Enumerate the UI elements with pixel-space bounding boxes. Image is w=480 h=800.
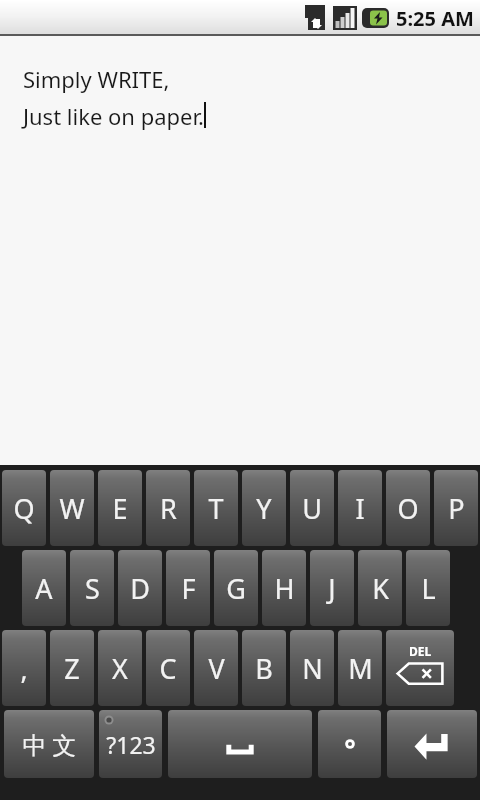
button[interactable]: Period: [318, 710, 381, 778]
button[interactable]: X: [98, 630, 142, 706]
staticText: A: [35, 570, 53, 607]
button[interactable]: Y: [242, 470, 286, 546]
button[interactable]: P: [434, 470, 478, 546]
staticText: B: [255, 650, 273, 687]
button[interactable]: S: [70, 550, 114, 626]
button[interactable]: I: [338, 470, 382, 546]
button[interactable]: K: [358, 550, 402, 626]
staticText: S: [85, 570, 100, 607]
button[interactable]: U: [290, 470, 334, 546]
staticText: N: [302, 650, 323, 687]
staticText: R: [160, 490, 177, 527]
staticText: C: [159, 650, 177, 687]
button[interactable]: D: [118, 550, 162, 626]
button[interactable]: B: [242, 630, 286, 706]
staticText: M: [348, 650, 373, 687]
staticText: O: [397, 490, 419, 527]
staticText: 5:25 AM: [396, 5, 474, 32]
staticText: V: [208, 650, 225, 687]
button[interactable]: R: [146, 470, 190, 546]
button[interactable]: ,: [2, 630, 46, 706]
button[interactable]: Delete: [386, 630, 454, 706]
button[interactable]: M: [338, 630, 382, 706]
button[interactable]: E: [98, 470, 142, 546]
button[interactable]: Q: [2, 470, 46, 546]
staticText: G: [226, 570, 246, 607]
button[interactable]: C: [146, 630, 190, 706]
staticText: Q: [13, 490, 35, 527]
staticText: K: [372, 570, 389, 607]
button[interactable]: W: [50, 470, 94, 546]
staticText: Y: [256, 490, 272, 527]
button[interactable]: Z: [50, 630, 94, 706]
staticText: 中 文: [22, 728, 77, 761]
button[interactable]: ?123: [99, 710, 162, 778]
button[interactable]: O: [386, 470, 430, 546]
staticText: ?123: [106, 729, 156, 760]
button[interactable]: Simply WRITE,: [0, 36, 480, 465]
staticText: J: [328, 570, 336, 607]
button[interactable]: N: [290, 630, 334, 706]
staticText: L: [421, 570, 436, 607]
staticText: E: [112, 490, 128, 527]
staticText: Simply WRITE,: [23, 64, 170, 94]
button[interactable]: 中 文: [4, 710, 94, 778]
button[interactable]: V: [194, 630, 238, 706]
button[interactable]: F: [166, 550, 210, 626]
staticText: ,: [20, 650, 28, 687]
staticText: F: [181, 570, 196, 607]
button[interactable]: Enter: [387, 710, 477, 778]
button[interactable]: G: [214, 550, 258, 626]
button[interactable]: L: [406, 550, 450, 626]
button[interactable]: T: [194, 470, 238, 546]
staticText: Just like on paper.: [23, 101, 204, 131]
button[interactable]: J: [310, 550, 354, 626]
button[interactable]: A: [22, 550, 66, 626]
button[interactable]: Space: [168, 710, 312, 778]
staticText: DEL: [409, 643, 432, 659]
button[interactable]: H: [262, 550, 306, 626]
staticText: T: [208, 490, 224, 527]
staticText: W: [59, 490, 85, 527]
staticText: H: [274, 570, 295, 607]
staticText: P: [448, 490, 465, 527]
staticText: Z: [64, 650, 80, 687]
staticText: X: [112, 650, 128, 687]
staticText: U: [302, 490, 322, 527]
staticText: I: [355, 490, 365, 527]
staticText: D: [130, 570, 150, 607]
